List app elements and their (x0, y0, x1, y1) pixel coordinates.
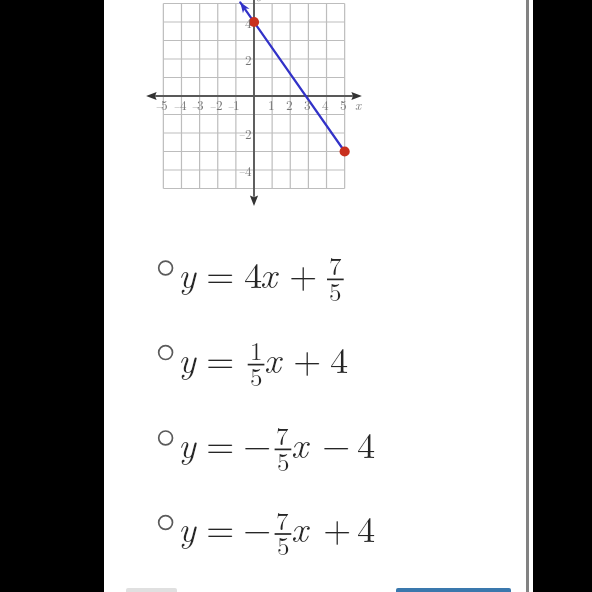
staticText: x (264, 332, 281, 384)
staticText: y (178, 417, 196, 469)
staticText: y (178, 247, 196, 299)
button[interactable] (150, 404, 420, 474)
button[interactable] (150, 489, 420, 559)
staticText: x (260, 247, 277, 299)
staticText: x (355, 95, 362, 114)
staticText: 3 (304, 95, 311, 114)
staticText: 4 (330, 332, 349, 384)
staticText: x (291, 501, 308, 553)
staticText: 5 (340, 95, 347, 114)
staticText: x (291, 417, 308, 469)
staticText: 2 (245, 124, 252, 143)
staticText: 4 (357, 501, 376, 553)
staticText: + (289, 247, 318, 299)
staticText: − (228, 101, 235, 113)
staticText: − (239, 129, 246, 141)
staticText: 4 (245, 161, 252, 180)
staticText: y (178, 332, 196, 384)
staticText: 4 (180, 95, 187, 114)
staticText: 7 (276, 502, 289, 537)
staticText: 1 (250, 332, 263, 367)
staticText: + (293, 332, 322, 384)
staticText: 4 (357, 417, 376, 469)
staticText: − (174, 101, 181, 113)
staticText: = (206, 247, 235, 299)
staticText: − (243, 417, 272, 469)
staticText: 5 (277, 443, 290, 478)
staticText: 1 (233, 95, 240, 114)
staticText: 7 (329, 247, 342, 282)
staticText: 2 (245, 50, 252, 69)
staticText: = (206, 501, 235, 553)
staticText: = (206, 417, 235, 469)
staticText: 1 (268, 95, 275, 114)
staticText: − (239, 166, 246, 178)
staticText: 4 (244, 247, 263, 299)
staticText: + (323, 501, 352, 553)
staticText: = (206, 332, 235, 384)
staticText: 4 (322, 95, 329, 114)
staticText: 7 (276, 417, 289, 452)
staticText: 5 (161, 95, 168, 114)
staticText: 2 (286, 95, 293, 114)
staticText: y (256, 0, 263, 3)
staticText: − (243, 501, 272, 553)
button[interactable] (150, 234, 420, 304)
staticText: − (322, 417, 351, 469)
staticText: y (178, 501, 196, 553)
staticText: 4 (245, 13, 252, 32)
button[interactable]: Submit (396, 588, 511, 592)
staticText: 5 (250, 358, 263, 393)
staticText: 5 (277, 527, 290, 562)
staticText: − (210, 101, 217, 113)
button[interactable] (150, 319, 420, 389)
staticText: 5 (329, 273, 342, 308)
staticText: − (156, 101, 163, 113)
staticText: 2 (216, 95, 223, 114)
staticText: 3 (197, 95, 204, 114)
staticText: − (192, 101, 199, 113)
